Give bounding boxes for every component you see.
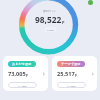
other: Details [91,72,95,76]
staticText: +120P [47,28,54,31]
staticText: +1,200P [18,84,27,87]
staticText: P [26,74,28,78]
staticText: 98,522 [35,14,62,25]
staticText: +1,200P [67,84,76,87]
staticText: おまかせ運用 [12,62,32,66]
staticText: P [75,74,77,78]
staticText: 25,517 [57,70,75,78]
button[interactable]: テーマで運用 [52,56,97,91]
button[interactable]: おまかせ運用 [3,56,48,91]
staticText: 73,005 [8,70,26,78]
staticText: P [62,20,65,25]
button[interactable]: Account [88,0,93,5]
other: Details [42,72,46,76]
staticText: 運用ポイント [43,10,57,13]
staticText: テーマで運用 [61,62,81,66]
